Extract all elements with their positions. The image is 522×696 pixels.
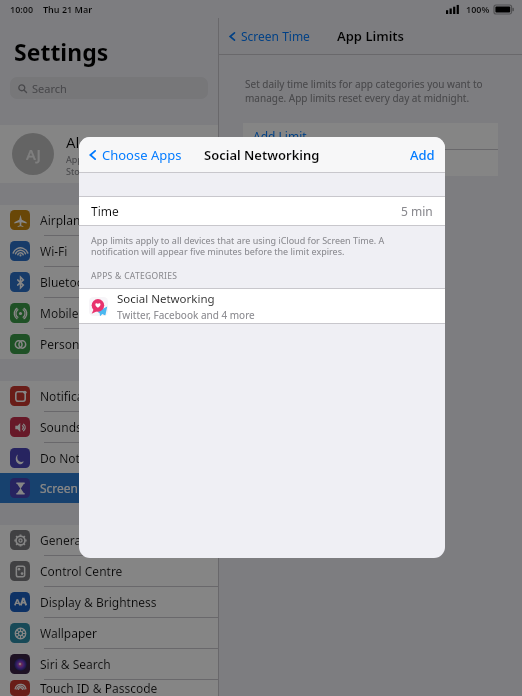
button[interactable]: Siri & Search — [10, 649, 218, 679]
button[interactable]: Airplane Mode — [10, 205, 218, 235]
button[interactable]: Wallpaper — [10, 618, 218, 648]
button[interactable]: Control Centre — [10, 556, 218, 586]
button[interactable]: Mobile Data — [10, 298, 218, 328]
button[interactable]: Screen Time — [227, 28, 310, 44]
staticText: Social Networking — [117, 291, 215, 307]
staticText: Add Limit — [253, 128, 307, 144]
button[interactable]: Screen Time — [10, 473, 218, 503]
staticText: Personal Hotspot — [40, 336, 138, 352]
button[interactable]: Wi-Fi — [10, 236, 218, 266]
button[interactable]: Add — [410, 146, 435, 164]
staticText: Mobile Data — [40, 305, 109, 321]
staticText: Wallpaper — [40, 625, 98, 641]
staticText: Thu 21 Mar — [43, 3, 93, 15]
staticText: App limits apply to all devices that are… — [91, 234, 433, 258]
button[interactable]: Do Not Disturb — [10, 443, 218, 473]
staticText: Social Networking — [204, 146, 320, 164]
button[interactable]: Personal Hotspot — [10, 329, 218, 359]
staticText: Airplane Mode — [40, 212, 123, 228]
staticText: Choose Apps — [102, 146, 182, 164]
staticText: Control Centre — [40, 563, 123, 579]
staticText: Bluetooth — [40, 274, 96, 290]
staticText: Apple ID, iCloud, iTunes & App Store — [66, 153, 218, 177]
button[interactable]: Notifications — [10, 381, 218, 411]
staticText: Time — [91, 203, 119, 219]
button[interactable]: Touch ID & Passcode — [10, 680, 218, 696]
staticText: Set daily time limits for app categories… — [245, 77, 496, 105]
staticText: Wi-Fi — [40, 243, 68, 259]
staticText: Notifications — [40, 388, 112, 404]
button[interactable]: General — [10, 525, 218, 555]
staticText: Sounds — [40, 419, 82, 435]
staticText: Siri & Search — [40, 656, 111, 672]
button[interactable]: Bluetooth — [10, 267, 218, 297]
staticText: Add — [410, 146, 435, 164]
staticText: AJ — [26, 144, 41, 164]
staticText: General — [40, 532, 85, 548]
staticText: Screen Time — [40, 480, 109, 496]
staticText: Touch ID & Passcode — [40, 680, 158, 696]
staticText: 10:00 — [10, 3, 34, 15]
button[interactable] — [243, 150, 498, 176]
staticText: APPS & CATEGORIES — [91, 270, 178, 282]
staticText: Display & Brightness — [40, 594, 157, 610]
button[interactable]: Display & Brightness — [10, 587, 218, 617]
staticText: Screen Time — [241, 28, 310, 44]
staticText: Twitter, Facebook and 4 more — [117, 308, 255, 322]
button[interactable]: AJ — [0, 125, 218, 183]
staticText: App Limits — [337, 27, 405, 45]
staticText: Settings — [14, 36, 109, 67]
button[interactable]: Choose Apps — [87, 146, 182, 164]
button[interactable]: Add Limit — [243, 123, 498, 149]
staticText: 5 min — [401, 203, 433, 219]
button[interactable]: Social Networking — [89, 289, 445, 323]
staticText: Search — [32, 81, 67, 96]
staticText: 100% — [466, 3, 490, 15]
button[interactable]: Sounds — [10, 412, 218, 442]
button[interactable]: Time — [91, 197, 433, 225]
staticText: Do Not Disturb — [40, 450, 125, 466]
staticText: Alan Jackson — [66, 132, 155, 152]
button[interactable]: Search — [10, 77, 208, 99]
